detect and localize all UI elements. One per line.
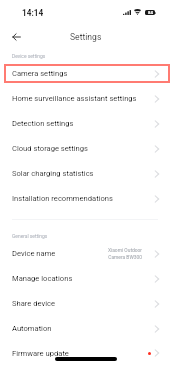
staticText: Camera settings	[12, 69, 68, 78]
staticText: Device settings	[12, 53, 46, 59]
staticText: Installation recommendations	[12, 194, 113, 203]
staticText: Xiaomi Outdoor Camera BW300	[107, 247, 142, 261]
button[interactable]: Detection settings	[0, 111, 171, 136]
staticText: Cloud storage settings	[12, 144, 89, 153]
staticText: Detection settings	[12, 119, 74, 128]
staticText: Manage locations	[12, 274, 73, 283]
button[interactable]: Cloud storage settings	[0, 136, 171, 161]
button[interactable]: Back	[4, 25, 28, 48]
staticText: 14:14	[22, 8, 44, 18]
button[interactable]: Firmware update	[0, 341, 171, 365]
button[interactable]: Camera settings	[0, 61, 171, 86]
staticText: Device name	[12, 249, 56, 258]
staticText: Share device	[12, 299, 56, 308]
button[interactable]: Manage locations	[0, 266, 171, 291]
staticText: General settings	[12, 233, 48, 239]
button[interactable]: Installation recommendations	[0, 186, 171, 211]
button[interactable]: Home surveillance assistant settings	[0, 86, 171, 111]
staticText: Home surveillance assistant settings	[12, 94, 137, 103]
staticText: Settings	[70, 32, 102, 42]
staticText: 84	[148, 10, 153, 15]
staticText: Solar charging statistics	[12, 169, 94, 178]
button[interactable]: Automation	[0, 316, 171, 341]
button[interactable]: Share device	[0, 291, 171, 316]
button[interactable]: Solar charging statistics	[0, 161, 171, 186]
staticText: Automation	[12, 324, 52, 333]
button[interactable]: Device name	[0, 241, 171, 266]
staticText: Firmware update	[12, 349, 69, 358]
